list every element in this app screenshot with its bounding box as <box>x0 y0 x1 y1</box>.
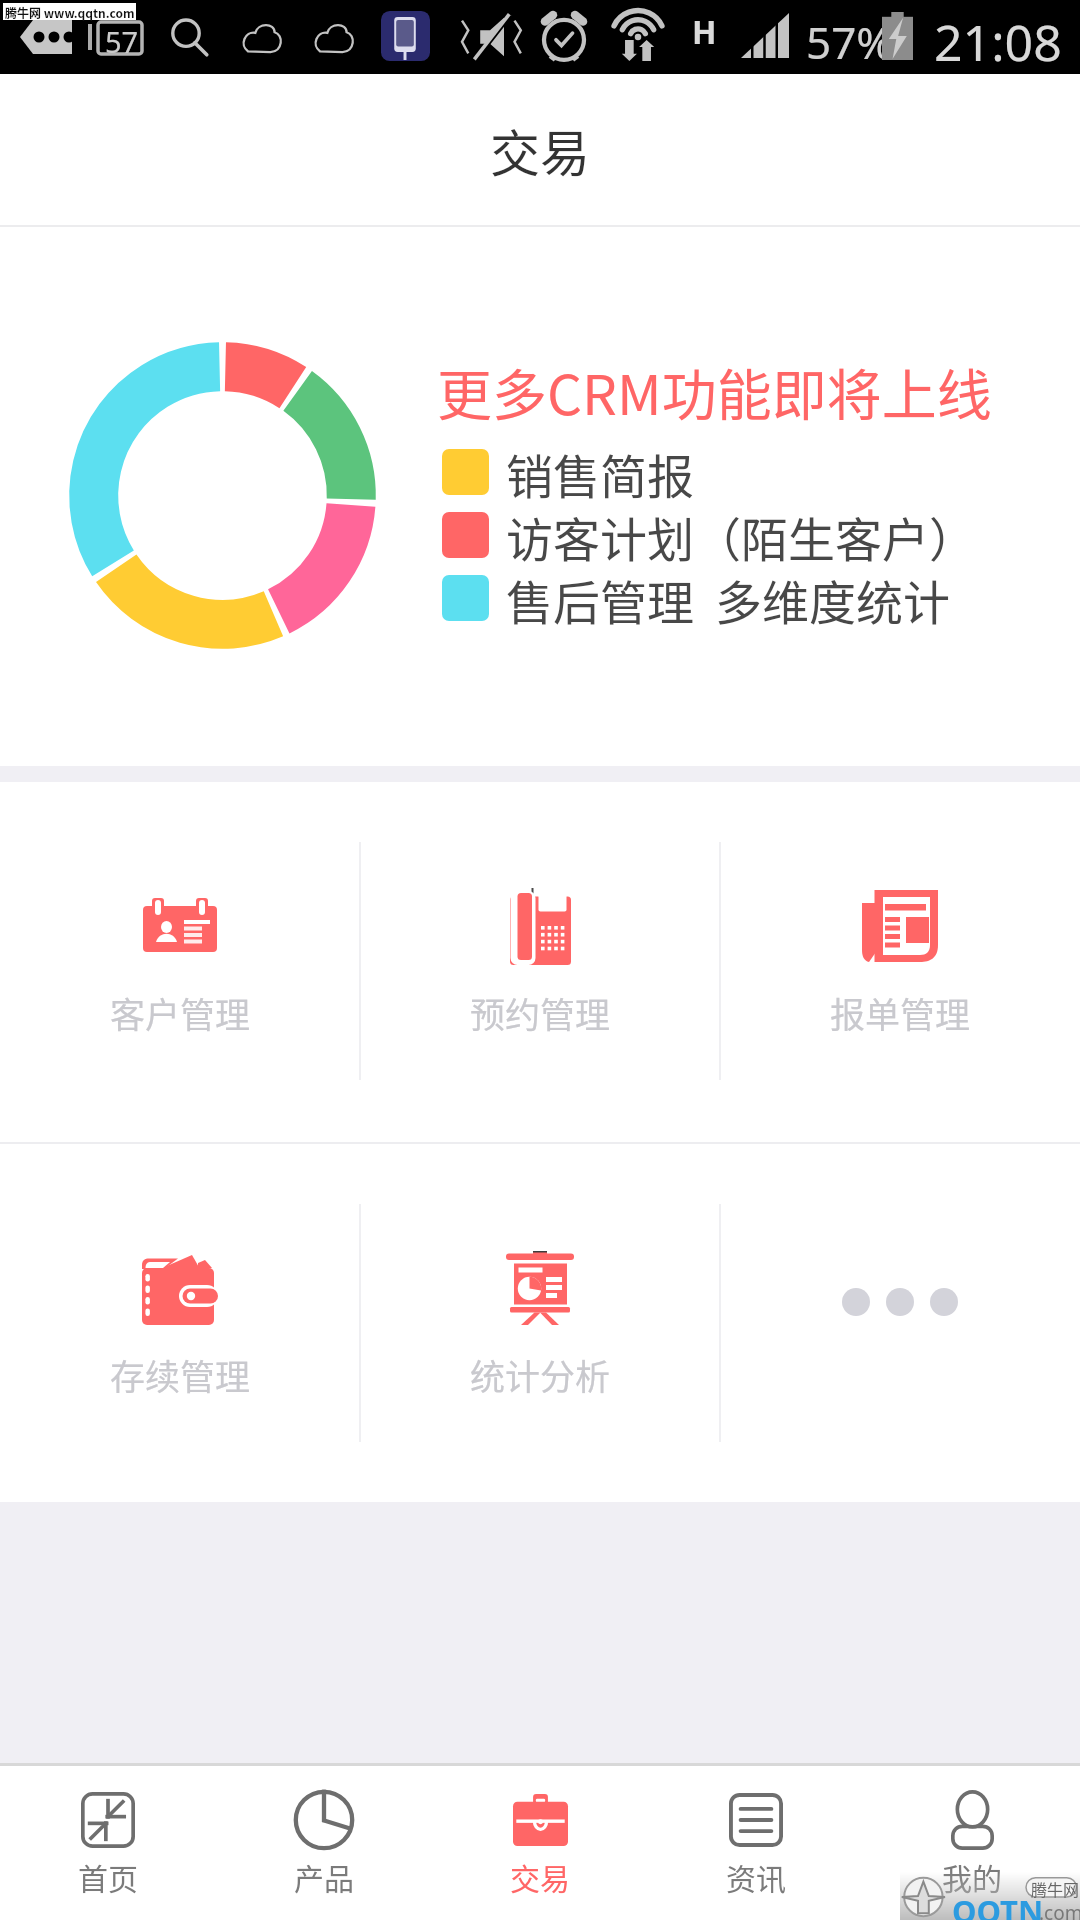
staticText: 我的 <box>942 1855 1002 1898</box>
staticText: 首页 <box>78 1855 138 1898</box>
staticText: .com <box>1039 1900 1080 1920</box>
button[interactable]: 客户管理 <box>0 782 360 1142</box>
staticText: 腾牛网 www.qqtn.com <box>5 4 135 21</box>
staticText: 存续管理 <box>110 1349 251 1400</box>
staticText: 57% <box>806 12 893 72</box>
button[interactable]: 统计分析 <box>360 1144 720 1502</box>
staticText: 交易 <box>490 114 590 186</box>
staticText: 产品 <box>294 1855 354 1898</box>
staticText: 资讯 <box>726 1855 786 1898</box>
staticText: 统计分析 <box>470 1349 611 1400</box>
staticText: H <box>692 10 717 54</box>
staticText: 报单管理 <box>830 987 971 1038</box>
staticText: 销售简报 <box>506 439 694 507</box>
staticText: 57 <box>105 22 139 61</box>
button[interactable]: 我的 <box>864 1766 1080 1920</box>
staticText: 预约管理 <box>470 987 611 1038</box>
staticText: QQTN <box>952 1890 1044 1920</box>
button[interactable]: 报单管理 <box>720 782 1080 1142</box>
button[interactable]: 存续管理 <box>0 1144 360 1502</box>
staticText: 访客计划（陌生客户） <box>506 502 976 570</box>
button[interactable]: 预约管理 <box>360 782 720 1142</box>
staticText: 腾牛网 <box>1031 1877 1080 1900</box>
staticText: 交易 <box>510 1855 570 1898</box>
staticText: 21:08 <box>934 8 1062 76</box>
staticText: 售后管理 多维度统计 <box>506 565 951 633</box>
button[interactable]: 资讯 <box>648 1766 864 1920</box>
button[interactable]: 交易 <box>432 1766 648 1920</box>
staticText: 客户管理 <box>110 987 251 1038</box>
staticText: 更多CRM功能即将上线 <box>437 351 992 431</box>
button[interactable]: 首页 <box>0 1766 216 1920</box>
button[interactable]: 产品 <box>216 1766 432 1920</box>
button[interactable]: More features <box>720 1144 1080 1502</box>
